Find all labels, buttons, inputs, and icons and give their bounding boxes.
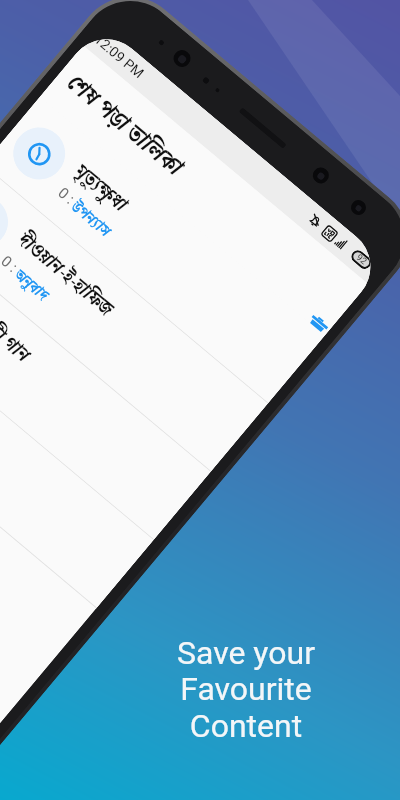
staticText: 0 : — [54, 184, 81, 210]
staticText: বিদ্রোহী গান — [0, 295, 36, 372]
button[interactable]: মৃত্যুক্ষুধা — [0, 97, 325, 404]
staticText: দীওয়ান-ই-হাফিজ — [10, 227, 120, 326]
button[interactable]: দীওয়ান-ই-হাফিজ — [0, 165, 268, 472]
button[interactable]: Delete history — [285, 295, 340, 352]
button[interactable]: বিদ্রোহী গান — [0, 233, 211, 540]
button[interactable]: গীতাঞ্জলি — [0, 301, 154, 608]
staticText: অনুবাদ — [9, 265, 54, 308]
staticText: 0 : — [0, 252, 24, 279]
staticText: 12:09 PM — [91, 31, 147, 82]
staticText: Save your Favourite Content — [136, 634, 356, 745]
staticText: শেষ পড়া তালিকা — [57, 67, 191, 188]
staticText: উপন্যাস — [66, 197, 117, 244]
staticText: 92 — [354, 252, 369, 268]
staticText: মৃত্যুক্ষুধা — [67, 158, 135, 222]
